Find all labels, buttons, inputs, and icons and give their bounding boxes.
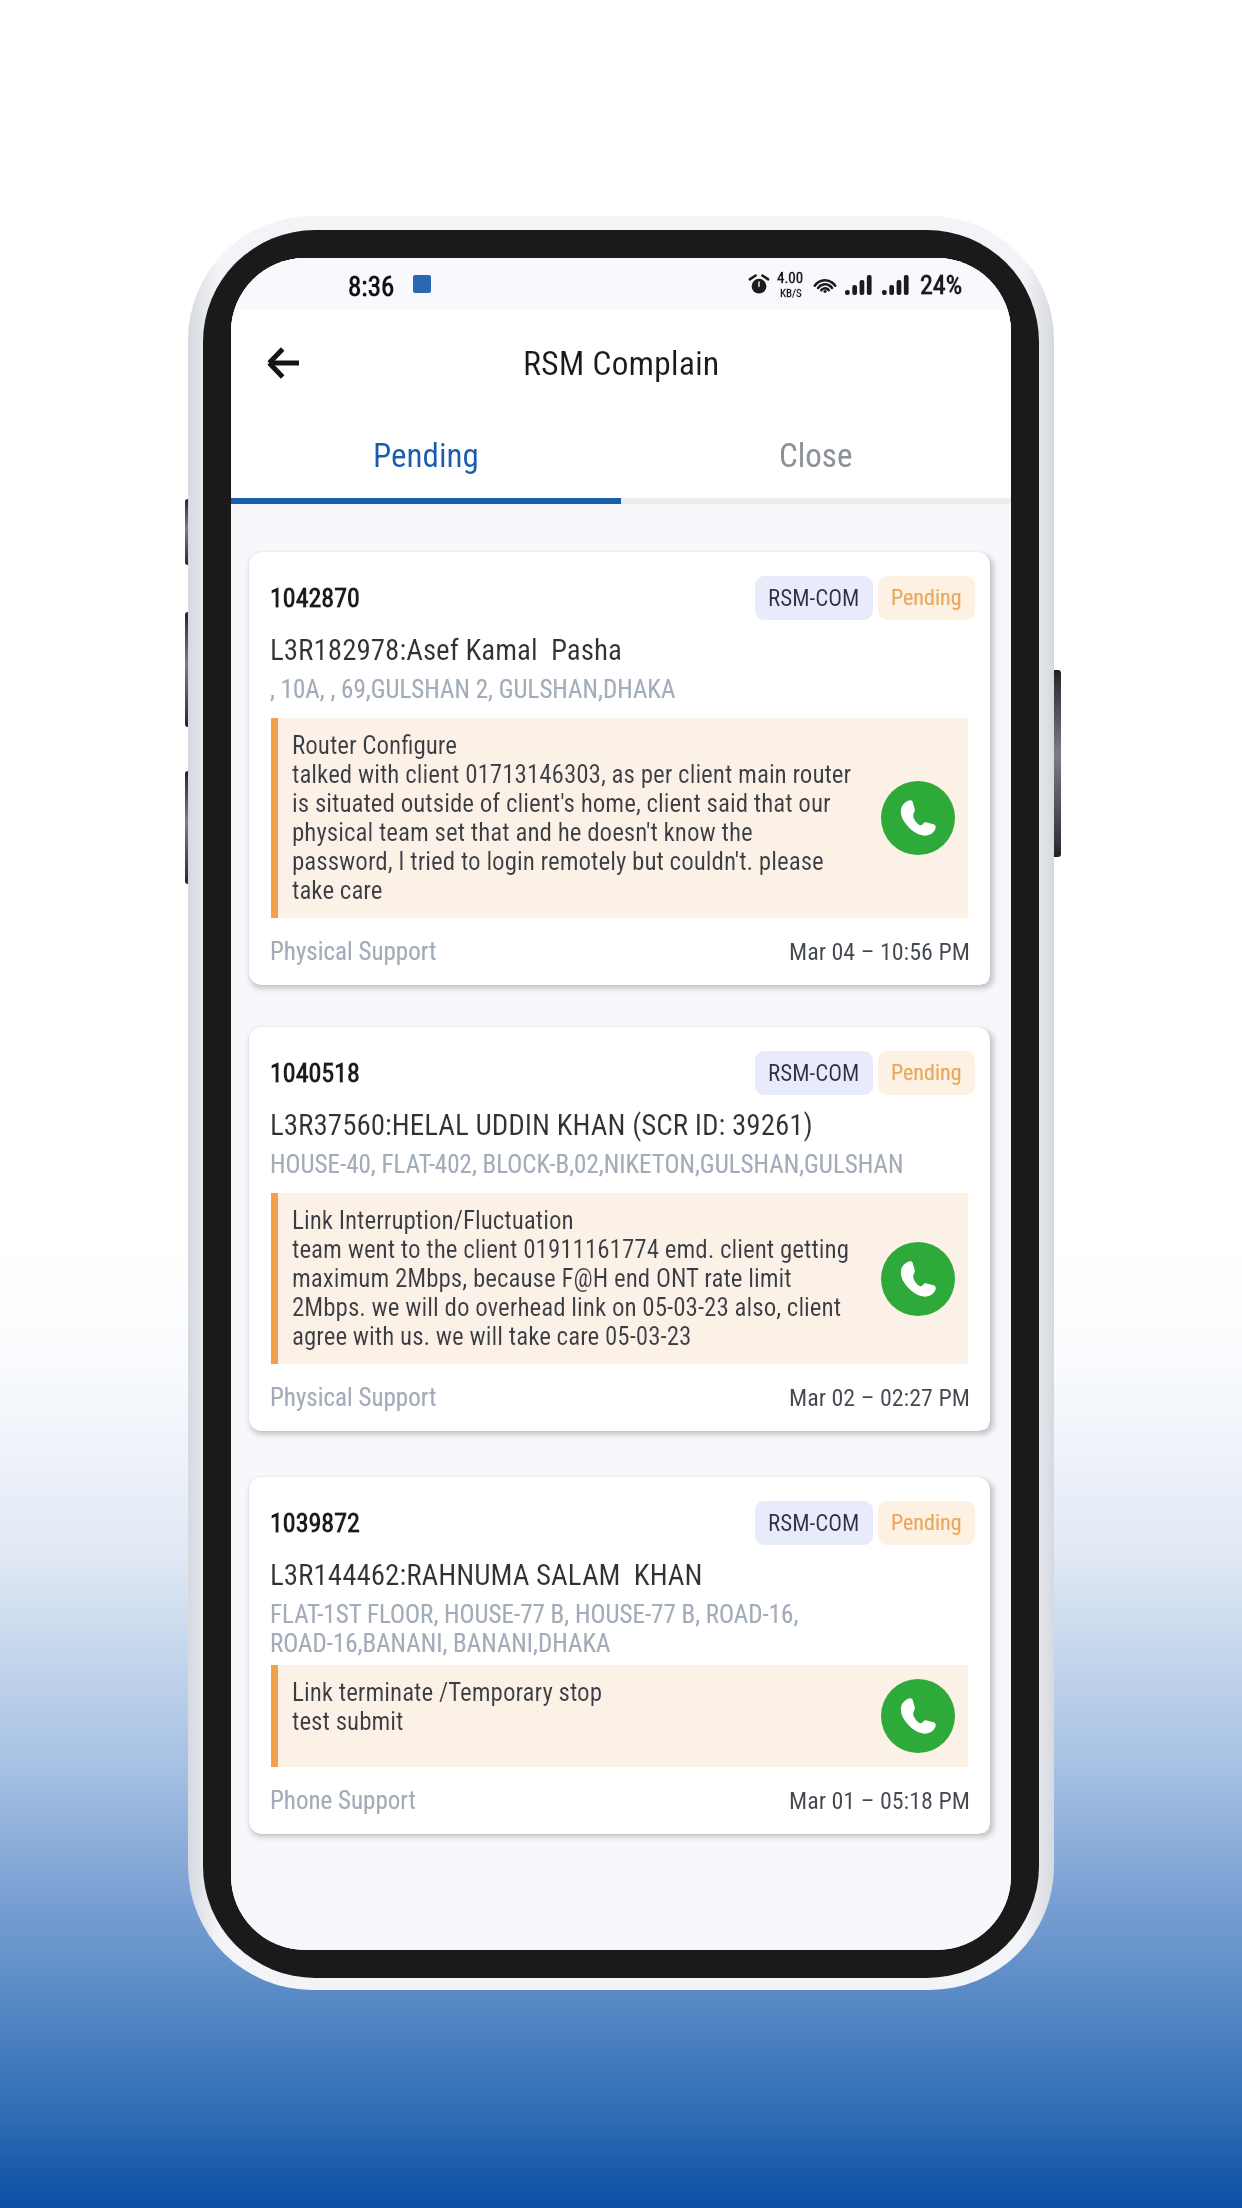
staticText: password, I tried to login remotely but … <box>292 847 824 876</box>
staticText: L3R144462:RAHNUMA SALAM KHAN <box>270 1558 703 1592</box>
staticText: maximum 2Mbps, because F@H end ONT rate … <box>292 1264 792 1293</box>
button[interactable]: Back <box>243 323 323 403</box>
staticText: HOUSE-40, FLAT-402, BLOCK-B,02,NIKETON,G… <box>270 1150 904 1179</box>
staticText: Phone Support <box>270 1786 416 1815</box>
staticText: agree with us. we will take care 05-03-2… <box>292 1322 692 1351</box>
staticText: Link terminate /Temporary stop <box>292 1678 602 1707</box>
staticText: Pending <box>891 585 962 611</box>
button[interactable]: Call <box>881 1242 955 1316</box>
staticText: , 10A, , 69,GULSHAN 2, GULSHAN,DHAKA <box>270 675 676 704</box>
staticText: 24% <box>920 270 963 300</box>
staticText: KB/S <box>780 287 802 300</box>
staticText: 1042870 <box>270 583 360 613</box>
staticText: Mar 02 – 02:27 PM <box>789 1384 970 1412</box>
staticText: test submit <box>292 1707 404 1736</box>
staticText: FLAT-1ST FLOOR, HOUSE-77 B, HOUSE-77 B, … <box>270 1600 799 1629</box>
staticText: Pending <box>891 1510 962 1536</box>
staticText: 4.00 <box>777 269 804 287</box>
staticText: Link Interruption/Fluctuation <box>292 1206 574 1235</box>
staticText: RSM Complain <box>523 343 720 383</box>
staticText: Physical Support <box>270 1383 437 1412</box>
staticText: take care <box>292 876 383 905</box>
staticText: Pending <box>373 436 479 475</box>
button[interactable]: 1039872 <box>249 1477 990 1834</box>
staticText: 1039872 <box>270 1508 360 1538</box>
staticText: Pending <box>891 1060 962 1086</box>
staticText: physical team set that and he doesn't kn… <box>292 818 753 847</box>
button[interactable]: Call <box>881 1679 955 1753</box>
button[interactable]: Pending <box>231 433 621 498</box>
staticText: RSM-COM <box>768 1060 860 1087</box>
staticText: 8:36 <box>348 271 395 303</box>
staticText: L3R182978:Asef Kamal Pasha <box>270 633 622 667</box>
staticText: Physical Support <box>270 937 437 966</box>
button[interactable]: Call <box>881 781 955 855</box>
staticText: L3R37560:HELAL UDDIN KHAN (SCR ID: 39261… <box>270 1108 813 1142</box>
staticText: Close <box>779 436 853 475</box>
staticText: Router Configure <box>292 731 457 760</box>
button[interactable]: 1040518 <box>249 1027 990 1431</box>
staticText: RSM-COM <box>768 585 860 612</box>
staticText: talked with client 01713146303, as per c… <box>292 760 852 789</box>
staticText: 1040518 <box>270 1058 360 1088</box>
staticText: Mar 01 – 05:18 PM <box>789 1787 970 1815</box>
button[interactable]: Close <box>621 433 1011 498</box>
button[interactable]: 1042870 <box>249 552 990 985</box>
staticText: is situated outside of client's home, cl… <box>292 789 831 818</box>
staticText: RSM-COM <box>768 1510 860 1537</box>
staticText: team went to the client 01911161774 emd.… <box>292 1235 849 1264</box>
staticText: ROAD-16,BANANI, BANANI,DHAKA <box>270 1629 611 1658</box>
staticText: 2Mbps. we will do overhead link on 05-03… <box>292 1293 842 1322</box>
staticText: Mar 04 – 10:56 PM <box>789 938 970 966</box>
